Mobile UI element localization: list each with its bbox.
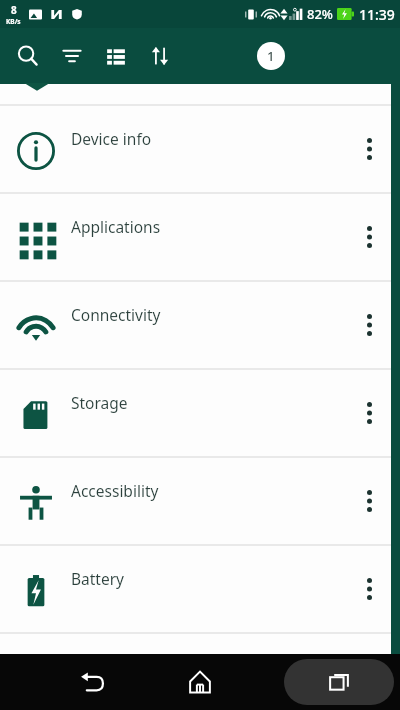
button[interactable]: Storage [0,370,400,456]
button[interactable]: Battery [0,546,400,632]
staticText: 1 [267,47,275,65]
staticText: Applications [71,216,161,237]
button[interactable]: Home [170,658,230,706]
button[interactable]: More options for Applications [351,209,387,265]
button[interactable]: Sort [138,34,182,78]
button[interactable]: Filter [50,34,94,78]
staticText: 8 [11,3,17,17]
button[interactable]: More options for Battery [351,561,387,617]
button[interactable]: More options for Connectivity [351,297,387,353]
staticText: Device info [71,128,152,149]
button[interactable]: Device info [0,106,400,192]
button[interactable]: Search [6,34,50,78]
staticText: 82% [307,5,333,23]
staticText: Connectivity [71,304,161,325]
staticText: Battery [71,568,125,589]
staticText: Storage [71,392,128,413]
button[interactable]: Back [62,658,122,706]
button[interactable]: Accessibility [0,458,400,544]
button[interactable]: Connectivity [0,282,400,368]
button[interactable]: 1 [257,42,285,70]
staticText: 11:39 [359,5,395,24]
staticText: Accessibility [71,480,159,501]
button[interactable]: Applications [0,194,400,280]
button[interactable] [0,84,400,104]
button[interactable]: More options for Device info [351,121,387,177]
button[interactable]: List view [94,34,138,78]
button[interactable]: More options for Storage [351,385,387,441]
button[interactable]: More options for Accessibility [351,473,387,529]
button[interactable]: Recent apps [284,659,394,705]
staticText: KB/s [6,17,21,26]
